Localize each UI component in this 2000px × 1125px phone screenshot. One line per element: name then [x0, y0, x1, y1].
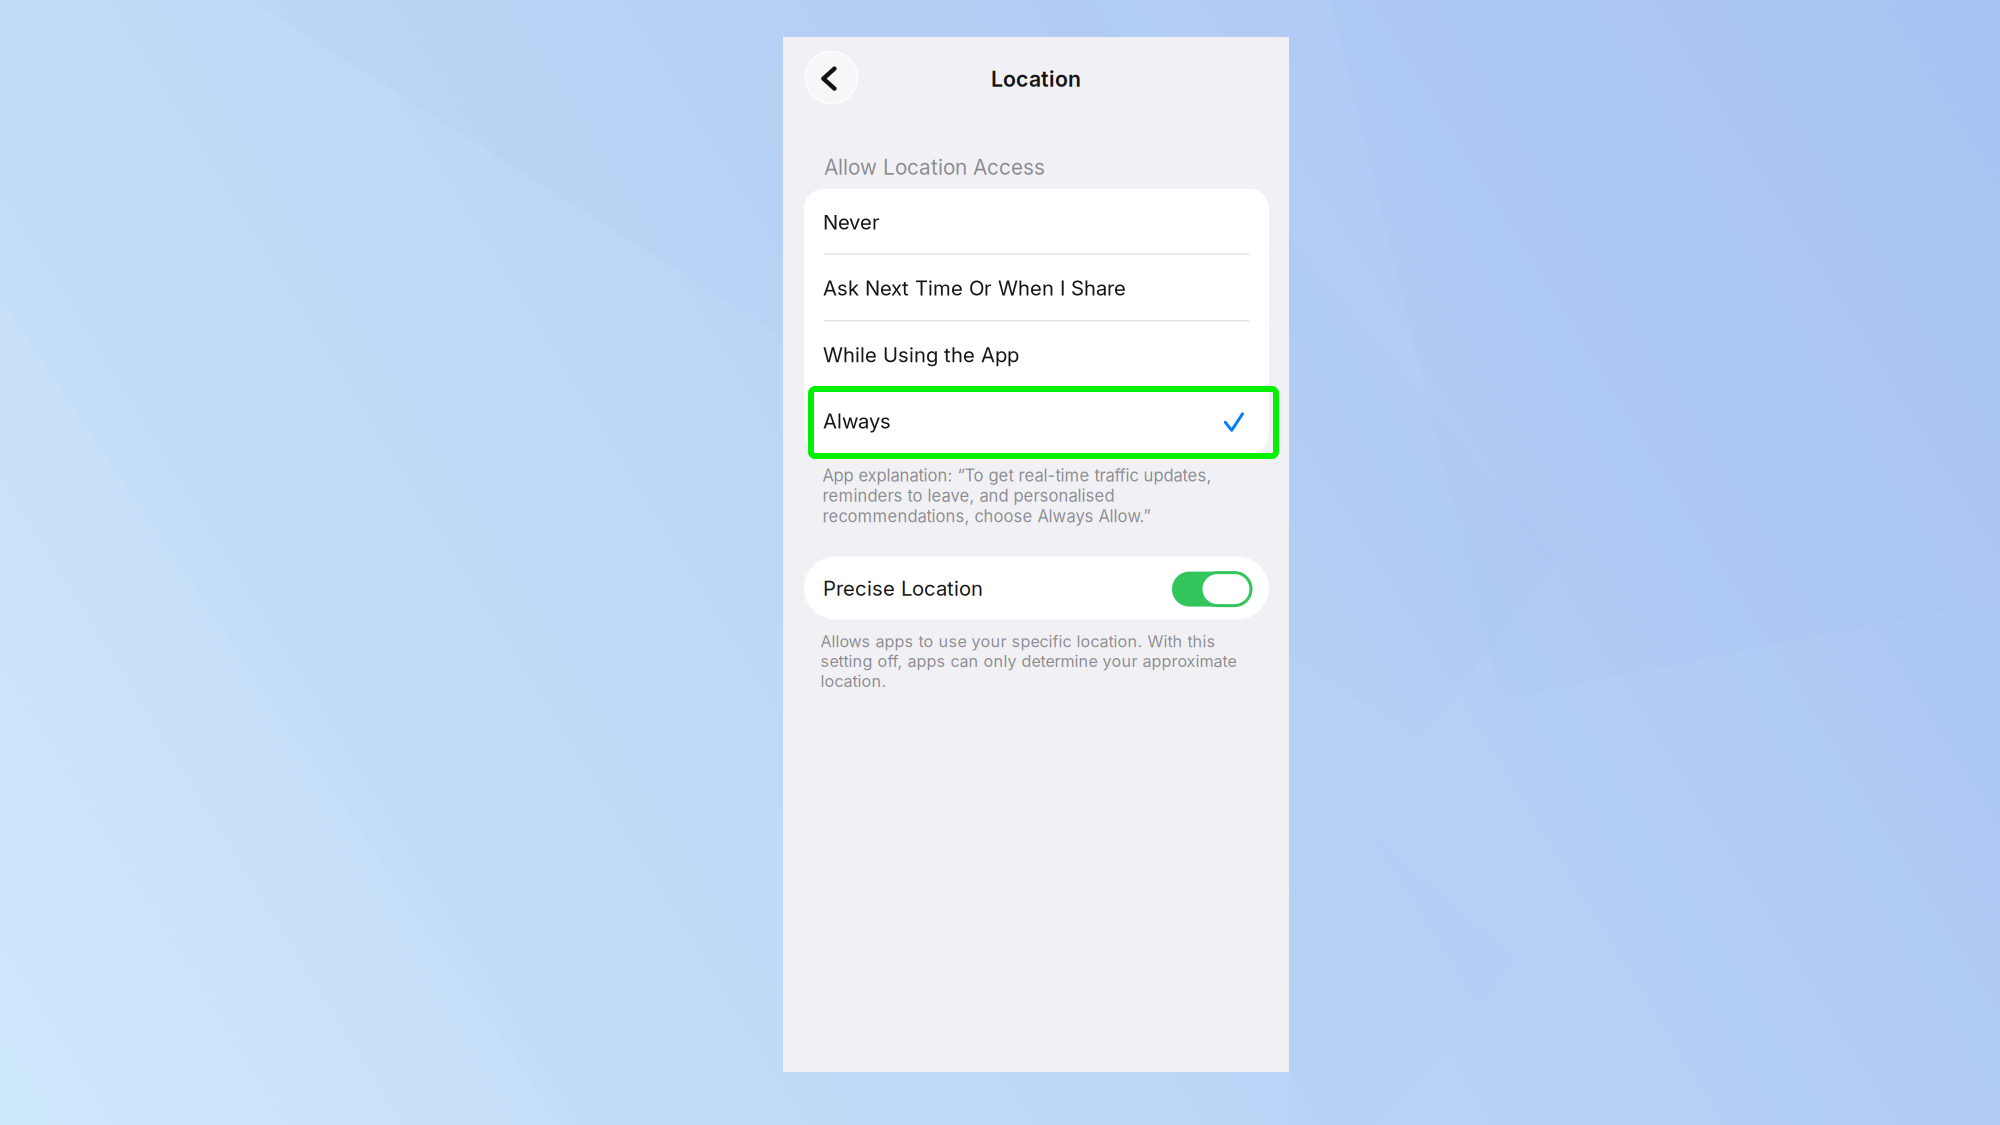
staticText: Ask Next Time Or When I Share: [823, 276, 1126, 300]
button[interactable]: Ask Next Time Or When I Share: [804, 254, 1269, 321]
staticText: App explanation: “To get real-time traff…: [822, 465, 1211, 526]
button[interactable]: Precise Location: [804, 556, 1269, 619]
button[interactable]: Always: [804, 387, 1269, 453]
button[interactable]: Never: [804, 189, 1269, 254]
button[interactable]: Back: [804, 51, 858, 105]
staticText: Allows apps to use your specific locatio…: [820, 631, 1236, 691]
staticText: Precise Location: [823, 576, 983, 600]
staticText: While Using the App: [823, 342, 1019, 367]
staticText: Always: [823, 409, 891, 433]
staticText: Location: [991, 66, 1081, 92]
button[interactable]: While Using the App: [804, 321, 1269, 387]
staticText: Allow Location Access: [824, 155, 1045, 180]
staticText: Never: [823, 210, 880, 234]
